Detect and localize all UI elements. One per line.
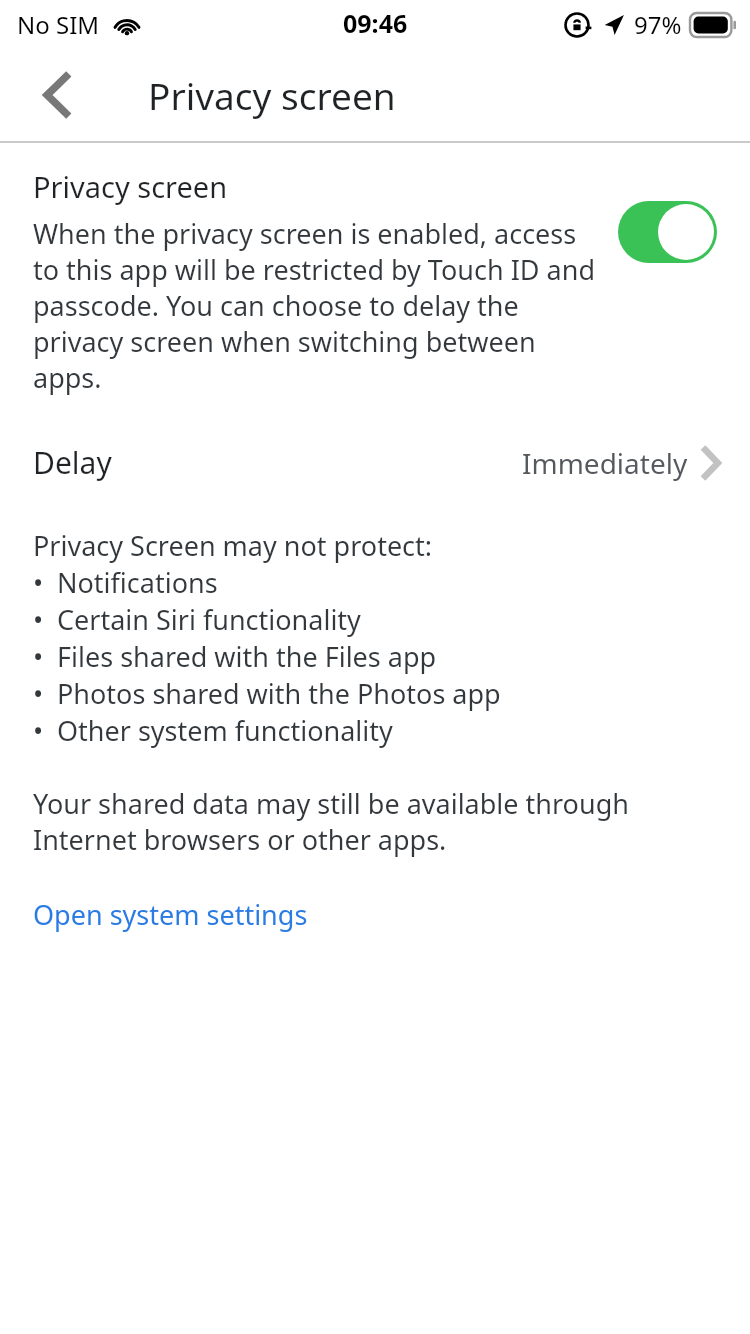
staticText: When the privacy screen is enabled, acce… <box>33 215 602 396</box>
staticText: Certain Siri functionality <box>57 601 361 638</box>
staticText: 97% <box>634 8 682 41</box>
staticText: • <box>33 638 57 675</box>
staticText: Privacy screen <box>148 70 396 120</box>
staticText: 09:46 <box>343 6 408 40</box>
staticText: Delay <box>33 442 112 483</box>
button[interactable]: Privacy screen toggle, on <box>618 201 717 263</box>
staticText: Notifications <box>57 564 218 601</box>
staticText: • <box>33 712 57 749</box>
staticText: Privacy screen <box>33 167 228 206</box>
staticText: Open system settings <box>33 896 308 933</box>
button[interactable]: Open system settings <box>33 896 308 933</box>
staticText: Your shared data may still be available … <box>33 785 717 858</box>
staticText: Other system functionality <box>57 712 393 749</box>
staticText: • <box>33 675 57 712</box>
button[interactable]: Privacy screen <box>0 143 750 396</box>
staticText: Photos shared with the Photos app <box>57 675 501 712</box>
staticText: Immediately <box>522 444 688 482</box>
staticText: Privacy Screen may not protect: <box>33 527 433 564</box>
staticText: • <box>33 601 57 638</box>
staticText: Files shared with the Files app <box>57 638 437 675</box>
button[interactable]: Back <box>18 56 96 134</box>
button[interactable]: Delay <box>0 438 750 487</box>
staticText: No SIM <box>17 8 100 41</box>
staticText: • <box>33 564 57 601</box>
